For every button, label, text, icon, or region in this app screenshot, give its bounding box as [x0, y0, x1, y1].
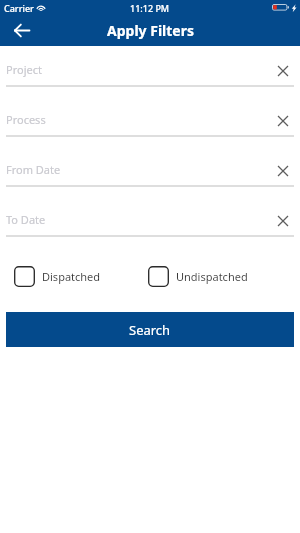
staticText: 11:12 PM	[130, 2, 170, 14]
staticText: To Date	[6, 212, 46, 227]
button[interactable]: Clear Project	[273, 61, 293, 81]
button[interactable]: Search	[6, 312, 294, 347]
staticText: Project	[6, 62, 42, 77]
staticText: From Date	[6, 162, 61, 177]
button[interactable]: Clear Process	[273, 111, 293, 131]
staticText: Apply Filters	[107, 21, 194, 40]
button[interactable]: Back	[8, 16, 36, 44]
button[interactable]: Dispatched	[14, 266, 101, 287]
staticText: Undispatched	[176, 269, 248, 284]
button[interactable]: Undispatched	[148, 266, 248, 287]
staticText: Process	[6, 112, 46, 127]
button[interactable]: Clear From Date	[273, 161, 293, 181]
staticText: Carrier	[4, 2, 34, 14]
staticText: Search	[129, 321, 171, 339]
button[interactable]: Clear To Date	[273, 211, 293, 231]
staticText: Dispatched	[42, 269, 101, 284]
